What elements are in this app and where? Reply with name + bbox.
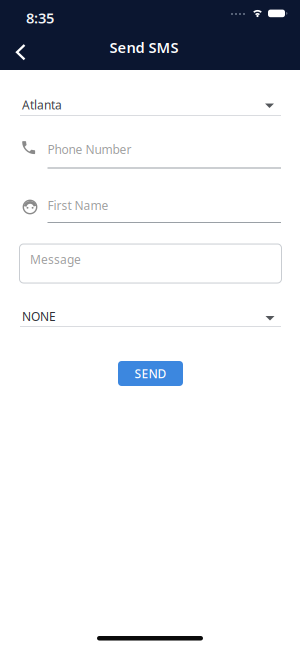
button[interactable]: Template — [20, 308, 281, 327]
button[interactable]: Message — [19, 244, 281, 283]
button[interactable]: City — [20, 97, 281, 116]
staticText: Send SMS — [109, 37, 178, 57]
button[interactable]: SEND — [118, 361, 183, 386]
staticText: Message — [30, 251, 81, 267]
button[interactable]: Back — [0, 38, 36, 67]
button[interactable]: Phone Number — [47, 142, 281, 168]
staticText: 8:35 — [26, 8, 54, 27]
button[interactable]: First Name — [47, 196, 281, 223]
staticText: SEND — [134, 365, 166, 381]
staticText: Atlanta — [22, 97, 62, 113]
staticText: Phone Number — [47, 141, 131, 157]
staticText: NONE — [22, 308, 56, 324]
staticText: First Name — [47, 197, 108, 213]
